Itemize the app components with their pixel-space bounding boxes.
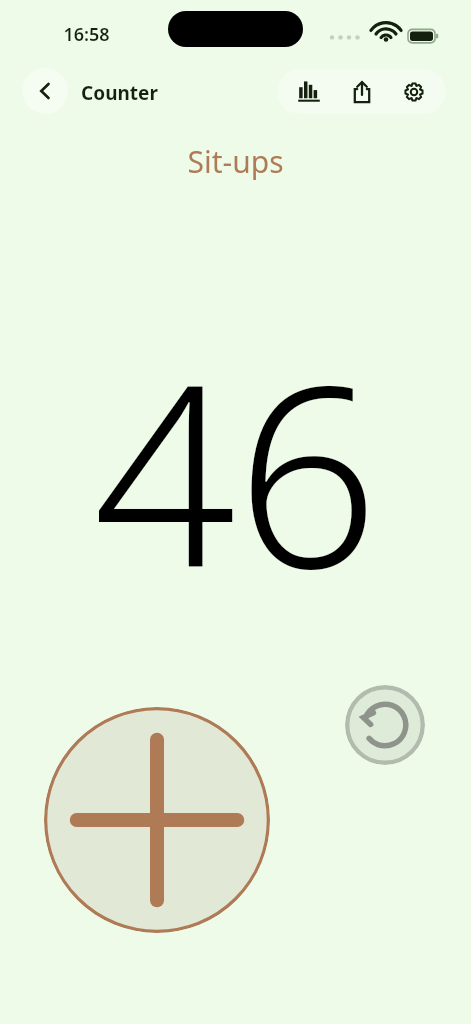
- button[interactable]: Share: [341, 71, 383, 113]
- staticText: Counter: [81, 80, 158, 106]
- staticText: Sit-ups: [187, 141, 284, 182]
- button[interactable]: Increment counter: [44, 707, 270, 933]
- staticText: 46: [93, 300, 379, 641]
- button[interactable]: Statistics: [288, 71, 330, 113]
- staticText: 16:58: [63, 22, 110, 47]
- button[interactable]: Reset counter: [345, 685, 425, 765]
- button[interactable]: Back: [22, 68, 68, 114]
- button[interactable]: Settings: [393, 71, 435, 113]
